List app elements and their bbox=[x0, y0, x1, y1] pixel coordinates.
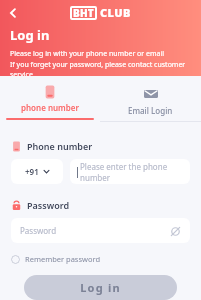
staticText: If you forget your password, please cont… bbox=[10, 60, 201, 76]
button[interactable]: Remember password bbox=[11, 254, 201, 264]
staticText: Password bbox=[27, 199, 70, 211]
staticText: Password bbox=[20, 225, 57, 236]
staticText: CLUB bbox=[100, 5, 131, 20]
staticText: Remember password bbox=[25, 254, 101, 264]
staticText: Please log in with your phone number or … bbox=[10, 49, 165, 59]
button[interactable]: Back bbox=[2, 2, 24, 24]
button[interactable]: Show password bbox=[168, 224, 182, 238]
button[interactable]: Please enter the phone number bbox=[70, 159, 190, 184]
staticText: Log in bbox=[80, 280, 121, 295]
button[interactable]: phone number bbox=[0, 82, 100, 126]
staticText: Log in bbox=[10, 26, 50, 44]
staticText: Please enter the phone number bbox=[80, 161, 190, 183]
button[interactable]: Log in bbox=[24, 275, 177, 300]
staticText: +91 bbox=[25, 166, 39, 177]
button[interactable]: Password bbox=[11, 218, 190, 243]
staticText: BHT bbox=[73, 6, 94, 20]
button[interactable]: +91 bbox=[11, 159, 63, 184]
staticText: phone number bbox=[21, 102, 79, 113]
button[interactable]: Email Login bbox=[100, 82, 201, 126]
staticText: Phone number bbox=[27, 140, 93, 152]
staticText: Email Login bbox=[128, 105, 173, 116]
